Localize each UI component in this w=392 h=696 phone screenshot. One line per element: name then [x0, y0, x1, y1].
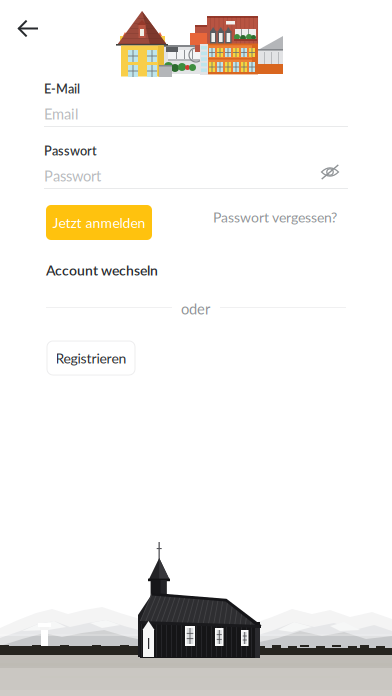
- button[interactable]: Show password: [313, 157, 347, 187]
- staticText: Passwort: [44, 143, 97, 158]
- staticText: Account wechseln: [46, 262, 158, 278]
- button[interactable]: Jetzt anmelden: [46, 205, 152, 240]
- staticText: Jetzt anmelden: [52, 214, 145, 231]
- staticText: Registrieren: [55, 350, 126, 366]
- staticText: Passwort vergessen?: [213, 209, 337, 225]
- staticText: Passwort: [44, 167, 101, 185]
- staticText: E-Mail: [44, 81, 80, 96]
- button[interactable]: Registrieren: [47, 341, 135, 375]
- button[interactable]: Passwort vergessen?: [210, 206, 340, 228]
- staticText: oder: [181, 300, 210, 318]
- button[interactable]: Account wechseln: [46, 259, 166, 281]
- button[interactable]: Back: [0, 0, 58, 56]
- staticText: Email: [44, 105, 78, 123]
